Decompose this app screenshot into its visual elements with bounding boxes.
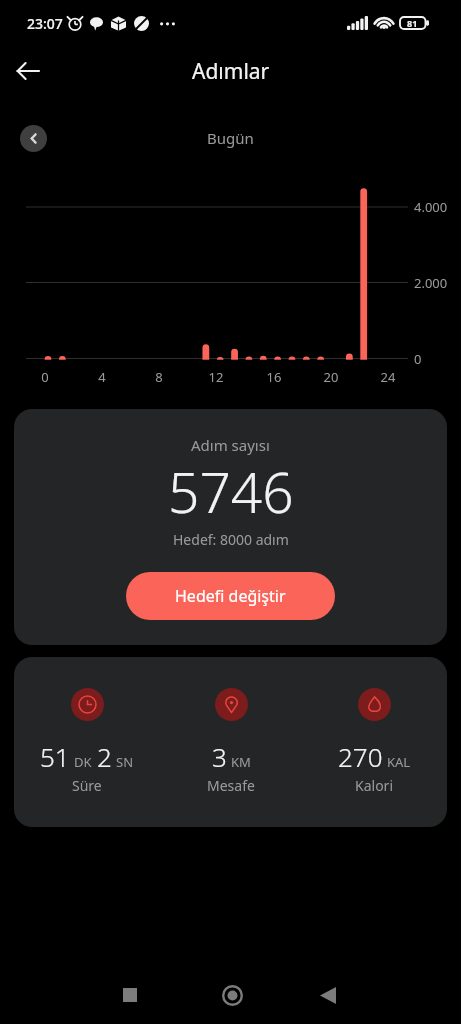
- staticText: Mesafe: [207, 776, 255, 795]
- staticText: 3: [212, 739, 227, 774]
- staticText: 5746: [168, 454, 294, 529]
- staticText: 81: [407, 17, 418, 29]
- staticText: 16: [259, 368, 289, 386]
- staticText: DK: [74, 753, 92, 771]
- button[interactable]: Previous day: [20, 125, 47, 152]
- staticText: 20: [316, 368, 346, 386]
- staticText: Kalori: [355, 776, 393, 795]
- staticText: Adımlar: [192, 57, 270, 86]
- button[interactable]: Home: [181, 971, 281, 1019]
- staticText: 8: [144, 368, 174, 386]
- button[interactable]: Recent apps: [81, 971, 181, 1019]
- staticText: Bugün: [207, 128, 254, 148]
- staticText: SN: [116, 753, 134, 771]
- staticText: Adım sayısı: [191, 435, 270, 455]
- staticText: 0: [30, 368, 60, 386]
- button[interactable]: Back: [6, 49, 50, 93]
- button[interactable]: Hedefi değiştir: [126, 572, 335, 620]
- button[interactable]: Back: [281, 971, 381, 1019]
- staticText: 12: [201, 368, 231, 386]
- staticText: 2.000: [414, 274, 448, 292]
- staticText: 24: [373, 368, 403, 386]
- staticText: KAL: [387, 753, 411, 771]
- staticText: Süre: [72, 776, 102, 795]
- staticText: 4.000: [414, 198, 448, 216]
- staticText: 4: [87, 368, 117, 386]
- staticText: KM: [231, 753, 251, 771]
- staticText: Hedef: 8000 adım: [173, 530, 289, 549]
- staticText: 23:07: [27, 14, 63, 33]
- staticText: 51: [40, 739, 70, 774]
- staticText: 270: [338, 739, 383, 774]
- staticText: Hedefi değiştir: [175, 585, 286, 607]
- staticText: 0: [414, 350, 422, 368]
- staticText: 2: [97, 739, 112, 774]
